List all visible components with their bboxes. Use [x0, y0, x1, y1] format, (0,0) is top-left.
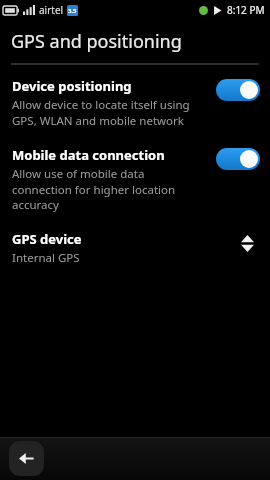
- staticText: airtel: [39, 3, 64, 17]
- staticText: 3.5: [68, 7, 77, 15]
- button[interactable]: Device positioning: [0, 75, 270, 130]
- staticText: Allow use of mobile data connection for …: [12, 166, 176, 212]
- staticText: Internal GPS: [12, 250, 80, 266]
- staticText: GPS device: [12, 230, 82, 248]
- staticText: GPS and positioning: [11, 29, 182, 54]
- button[interactable]: Back: [9, 441, 44, 476]
- button[interactable]: Toggle: [216, 148, 260, 170]
- staticText: Device positioning: [12, 77, 132, 95]
- button[interactable]: Mobile data connection: [0, 144, 270, 214]
- button[interactable]: GPS device: [0, 228, 270, 268]
- other: Select GPS device: [236, 230, 258, 256]
- staticText: 8:12 PM: [227, 3, 265, 17]
- staticText: Mobile data connection: [12, 146, 165, 164]
- button[interactable]: Toggle: [216, 79, 260, 101]
- staticText: Allow device to locate itself using GPS,…: [12, 97, 190, 128]
